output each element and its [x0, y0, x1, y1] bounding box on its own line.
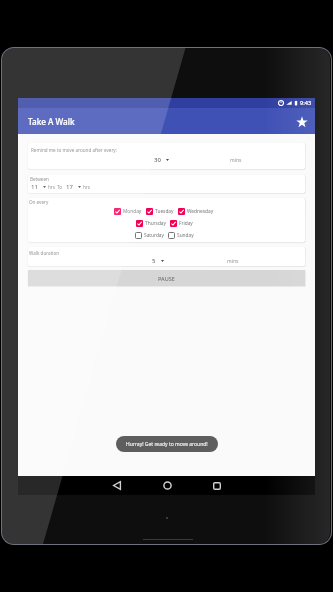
button[interactable]: Wednesday — [178, 208, 214, 215]
button[interactable]: 30 — [154, 156, 169, 164]
staticText: Between — [30, 176, 49, 182]
staticText: To — [57, 184, 63, 190]
button[interactable]: 5 — [152, 257, 164, 265]
staticText: Walk duration — [29, 250, 60, 256]
staticText: Monday — [123, 208, 142, 215]
staticText: Tuesday — [155, 208, 174, 215]
button[interactable]: Home — [152, 476, 182, 495]
staticText: On every — [29, 199, 49, 205]
staticText: 5 — [152, 257, 156, 265]
staticText: Friday — [179, 220, 193, 227]
button[interactable]: 17 — [66, 183, 81, 191]
button[interactable]: PAUSE — [28, 270, 305, 286]
button[interactable]: Thursday — [136, 220, 166, 227]
staticText: 11 — [31, 183, 38, 191]
staticText: Saturday — [144, 232, 164, 239]
button[interactable]: Tuesday — [146, 208, 174, 215]
staticText: 30 — [154, 156, 161, 164]
button[interactable]: Recent apps — [202, 476, 232, 495]
button[interactable]: Back — [102, 476, 132, 495]
staticText: 9:43 — [300, 99, 312, 107]
staticText: 17 — [66, 183, 73, 191]
button[interactable]: Sunday — [168, 232, 194, 239]
staticText: hrs — [48, 184, 55, 190]
staticText: hrs — [83, 184, 90, 190]
staticText: Sunday — [177, 232, 194, 239]
staticText: Remind me to move around after every: — [31, 147, 117, 153]
staticText: Wednesday — [187, 208, 214, 215]
button[interactable]: Saturday — [135, 232, 164, 239]
button[interactable]: Favourite — [295, 115, 308, 128]
staticText: PAUSE — [158, 275, 175, 282]
staticText: mins — [230, 157, 242, 164]
button[interactable]: Monday — [114, 208, 142, 215]
button[interactable]: Friday — [170, 220, 193, 227]
staticText: mins — [227, 258, 239, 265]
button[interactable]: 11 — [31, 183, 46, 191]
staticText: Thursday — [145, 220, 166, 227]
staticText: Hurray! Get ready to move around! — [126, 441, 208, 448]
staticText: Take A Walk — [28, 116, 75, 127]
